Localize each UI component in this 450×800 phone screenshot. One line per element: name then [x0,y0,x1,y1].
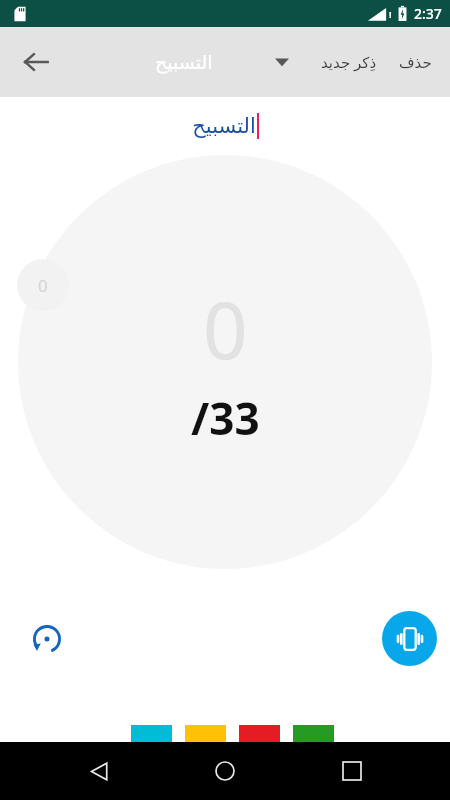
button[interactable]: Colour swatch [239,725,280,766]
button[interactable]: Select dhikr [262,42,302,82]
staticText: التسبيح [155,51,213,73]
button[interactable]: Colour swatch [131,725,172,766]
staticText: 2:37 [414,4,442,23]
staticText: ! [389,8,392,20]
button[interactable]: Back [71,743,127,799]
button[interactable]: Home [197,743,253,799]
button[interactable]: Recent apps [324,743,380,799]
staticText: حذف [399,54,432,71]
button[interactable]: Colour swatch [185,776,226,800]
button[interactable]: Toggle vibration [382,611,437,666]
staticText: 0 [203,276,248,382]
button[interactable]: التسبيح [155,51,213,73]
button[interactable]: Colour swatch [293,725,334,766]
button[interactable]: Colour swatch [185,725,226,766]
button[interactable]: ذِكر جديد [315,46,383,78]
button[interactable]: التسبيح [192,113,259,139]
button[interactable]: 0 [17,259,69,311]
staticText: ذِكر جديد [321,52,377,72]
staticText: 0 [38,274,48,297]
staticText: التسبيح [192,114,256,138]
button[interactable]: Back [8,34,64,90]
button[interactable]: حذف [393,48,438,77]
staticText: /33 [191,388,260,448]
button[interactable]: Reset counter [18,610,76,668]
button[interactable]: 0 [18,155,432,569]
